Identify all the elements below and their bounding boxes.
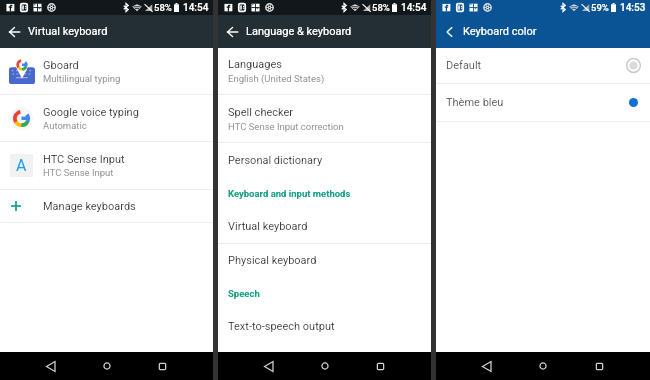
staticText: Spell checker [228,106,294,119]
staticText: 14:54 [401,2,427,14]
staticText: Multilingual typing [43,73,121,84]
staticText: 58% [372,2,390,13]
staticText: Personal dictionary [228,154,323,167]
staticText: English (United States) [228,73,325,84]
button[interactable]: Back [218,15,246,48]
staticText: Language & keyboard [246,25,352,38]
button[interactable]: Spell checker [218,95,431,142]
button[interactable]: Recents [586,353,612,379]
button[interactable]: Back [38,353,64,379]
staticText: Speech [228,288,260,299]
staticText: 14:54 [183,2,209,14]
button[interactable]: Back [256,353,282,379]
staticText: 14:53 [620,2,646,14]
button[interactable]: Gboard [0,48,213,94]
button[interactable]: Speech [218,277,431,310]
staticText: Text-to-speech output [228,320,335,333]
button[interactable]: Languages [218,48,431,94]
staticText: Automatic [43,120,87,131]
staticText: 58% [154,2,172,13]
button[interactable]: Virtual keyboard [218,210,431,243]
button[interactable]: Back [0,15,28,48]
button[interactable]: Back [474,353,500,379]
button[interactable]: Google voice typing [0,95,213,141]
staticText: Google voice typing [43,106,139,119]
staticText: HTC Sense Input [43,167,114,178]
staticText: Default [446,59,482,72]
staticText: Keyboard color [463,25,537,38]
staticText: HTC Sense Input [43,153,125,166]
button[interactable]: Thème bleu [436,84,650,121]
staticText: Virtual keyboard [228,220,308,233]
button[interactable]: Recents [149,353,175,379]
button[interactable]: Text-to-speech output [218,310,431,343]
button[interactable]: Default [436,48,650,83]
staticText: HTC Sense Input correction [228,121,344,132]
button[interactable]: A [0,142,213,189]
button[interactable]: Recents [367,353,393,379]
button[interactable]: Home [312,353,338,379]
staticText: A [16,156,27,175]
staticText: Languages [228,58,282,71]
button[interactable]: Back [436,15,463,48]
staticText: Gboard [43,59,79,72]
staticText: Manage keyboards [43,200,136,213]
button[interactable]: Manage keyboards [0,190,213,222]
staticText: 59% [591,2,609,13]
staticText: Keyboard and input methods [228,188,351,199]
button[interactable]: Keyboard and input methods [218,177,431,210]
staticText: Virtual keyboard [28,25,108,38]
button[interactable]: Physical keyboard [218,244,431,277]
staticText: Physical keyboard [228,254,317,267]
button[interactable]: Personal dictionary [218,143,431,177]
button[interactable]: Home [530,353,556,379]
staticText: Thème bleu [446,96,504,109]
button[interactable]: Home [94,353,120,379]
